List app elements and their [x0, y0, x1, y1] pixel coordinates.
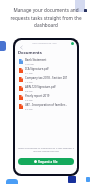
button[interactable]: Yearly report 2019	[15, 93, 77, 102]
button[interactable]: ABN-120 Signature.pdf	[15, 84, 77, 93]
staticText: Your Company ltd. dsh	[32, 42, 57, 45]
staticText: VAT - Incorporation of families - Signed	[25, 103, 74, 107]
staticText: 2.1 Mb	[25, 72, 33, 75]
staticText: 2.7 Mb	[25, 108, 33, 111]
staticText: ICA Signature.pdf	[25, 67, 49, 71]
staticText: Manage your documents and requests tasks…	[6, 7, 86, 28]
staticText: Need a certificate or signature on a fil…	[17, 146, 75, 153]
staticText: 14.0 Mb	[25, 63, 34, 66]
button[interactable]: ICA Signature.pdf	[15, 66, 77, 75]
staticText: 0.8 Mb	[25, 90, 33, 93]
staticText: Documents	[18, 50, 42, 56]
staticText: Company tax 2018 - Section 201	[25, 76, 68, 80]
button[interactable]: Request a file	[18, 158, 74, 165]
button[interactable]: VAT - Incorporation of families - Signed	[15, 102, 77, 111]
staticText: ABN-120 Signature.pdf	[25, 85, 56, 89]
staticText: Request a file	[38, 160, 58, 164]
staticText: 1.4 Mb	[25, 81, 33, 84]
staticText: Yearly report 2019	[25, 94, 50, 98]
button[interactable]: Bank Statement	[15, 57, 77, 66]
staticText: Bank Statement	[25, 58, 47, 62]
button[interactable]: Company tax 2018 - Section 201	[15, 75, 77, 84]
staticText: 3.2 Mb	[25, 99, 33, 102]
